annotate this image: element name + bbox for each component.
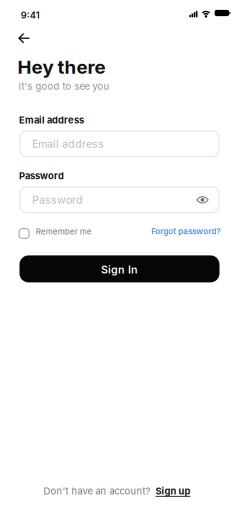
staticText: Don't have an account? bbox=[43, 485, 150, 496]
staticText: Email address bbox=[19, 114, 84, 125]
staticText: Email address bbox=[32, 137, 104, 150]
staticText: Password bbox=[32, 194, 83, 206]
staticText: 9:41 bbox=[21, 10, 40, 21]
staticText: Sign up bbox=[155, 485, 190, 496]
staticText: Password bbox=[19, 170, 64, 181]
staticText: Remember me bbox=[36, 227, 92, 236]
staticText: Hey there bbox=[18, 56, 106, 78]
staticText: It's good to see you bbox=[19, 81, 110, 92]
staticText: Forgot password? bbox=[151, 226, 220, 236]
staticText: Sign In bbox=[101, 263, 138, 276]
